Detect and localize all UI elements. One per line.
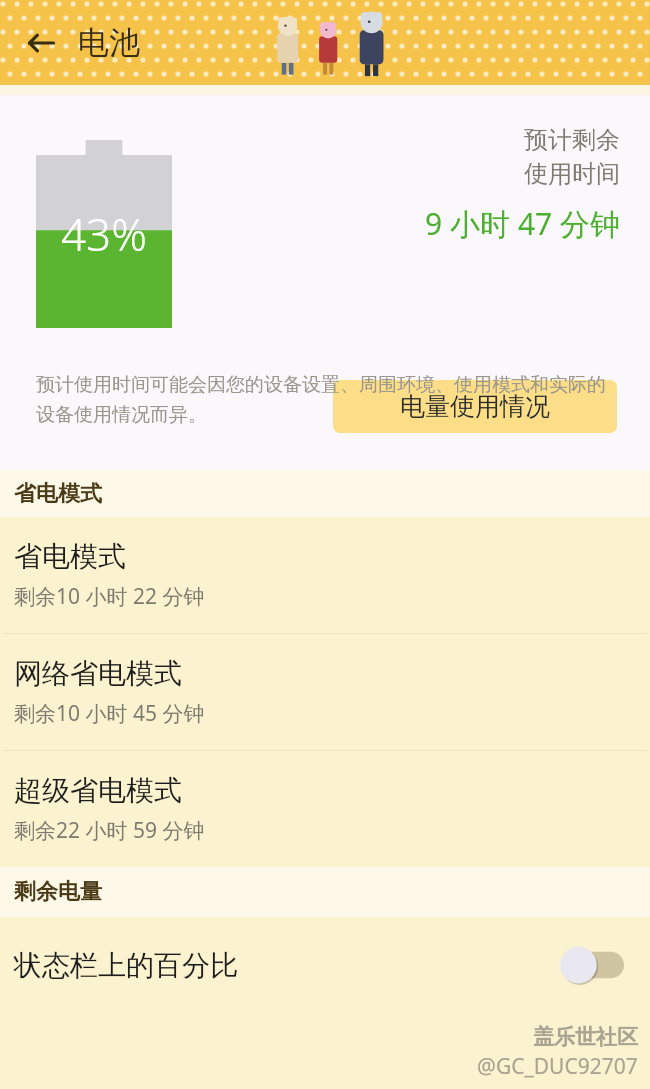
button[interactable]: 状态栏上的百分比 (0, 917, 650, 1013)
button[interactable]: 超级省电模式 (0, 751, 650, 867)
staticText: 超级省电模式 (14, 773, 182, 808)
button[interactable]: Back (18, 20, 64, 66)
staticText: 使用时间 (524, 159, 620, 189)
button[interactable]: 省电模式 (0, 517, 650, 633)
button[interactable]: 网络省电模式 (0, 634, 650, 750)
button[interactable]: 电量使用情况 (333, 380, 617, 433)
staticText: 剩余22 小时 59 分钟 (14, 816, 205, 845)
staticText: 盖乐世社区 (533, 1024, 638, 1050)
staticText: 状态栏上的百分比 (14, 948, 560, 983)
staticText: 剩余10 小时 45 分钟 (14, 699, 205, 728)
staticText: 预计剩余 (524, 125, 620, 155)
staticText: 电池 (78, 23, 140, 62)
staticText: 43% (61, 204, 147, 264)
staticText: 剩余电量 (14, 878, 102, 906)
staticText: 电量使用情况 (400, 391, 550, 422)
staticText: 剩余10 小时 22 分钟 (14, 582, 205, 611)
staticText: 预计使用时间可能会因您的设备设置、周围环境、使用模式和实际的设备使用情况而异。 (36, 373, 606, 427)
staticText: @GC_DUC92707 (477, 1052, 638, 1081)
staticText: 省电模式 (14, 539, 126, 574)
staticText: 省电模式 (14, 480, 102, 508)
staticText: 网络省电模式 (14, 656, 182, 691)
staticText: 9 小时 47 分钟 (425, 203, 620, 244)
